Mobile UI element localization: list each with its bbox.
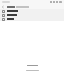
button[interactable]	[0, 9, 64, 13]
button[interactable]	[0, 17, 64, 21]
button[interactable]: Back	[1, 5, 5, 9]
button[interactable]	[0, 13, 64, 17]
button[interactable]	[26, 64, 39, 67]
